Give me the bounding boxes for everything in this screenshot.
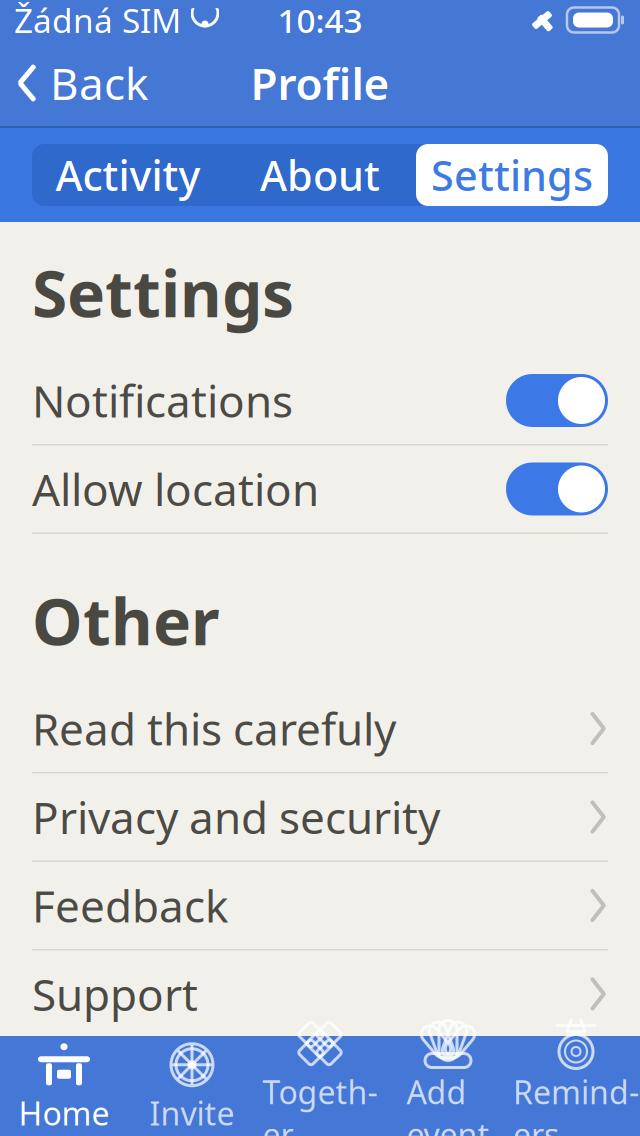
button[interactable]: Support — [0, 950, 640, 1039]
staticText: Profile — [250, 54, 389, 112]
staticText: Invite — [149, 1092, 234, 1134]
staticText: Add event — [406, 1070, 489, 1136]
button[interactable]: Allow location — [0, 445, 640, 534]
staticText: Allow location — [32, 460, 319, 518]
button[interactable]: Back — [0, 50, 164, 116]
staticText: Support — [32, 965, 198, 1023]
staticText: Help us — [32, 1053, 187, 1112]
staticText: Feedback — [32, 876, 228, 935]
button[interactable]: Settings — [416, 144, 608, 206]
button[interactable]: Feedback — [0, 862, 640, 950]
button[interactable]: Privacy and security — [0, 773, 640, 862]
staticText: Privacy and security — [32, 788, 440, 846]
staticText: Read this carefuly — [32, 699, 396, 758]
staticText: Other — [32, 578, 220, 663]
staticText: Together — [262, 1070, 377, 1136]
button[interactable]: Add event — [384, 1036, 512, 1136]
button[interactable]: About — [224, 144, 416, 206]
staticText: About — [260, 148, 380, 202]
staticText: Activity — [55, 148, 200, 202]
staticText: Back — [50, 54, 148, 112]
staticText: 10:43 — [277, 0, 362, 42]
button[interactable]: Activity — [32, 144, 224, 206]
button[interactable]: Read this carefuly — [0, 685, 640, 773]
button[interactable]: Together — [256, 1036, 384, 1136]
button[interactable]: Notifications — [0, 357, 640, 445]
staticText: Reminders — [513, 1070, 639, 1136]
button[interactable]: Invite — [128, 1036, 256, 1136]
staticText: Home — [18, 1092, 109, 1134]
button[interactable]: Reminders — [512, 1036, 640, 1136]
staticText: Notifications — [32, 371, 293, 430]
staticText: Žádná SIM — [14, 0, 181, 42]
button[interactable]: Home — [0, 1036, 128, 1136]
staticText: Settings — [431, 148, 593, 202]
button[interactable]: Help us — [0, 1039, 640, 1127]
staticText: Settings — [32, 250, 294, 335]
